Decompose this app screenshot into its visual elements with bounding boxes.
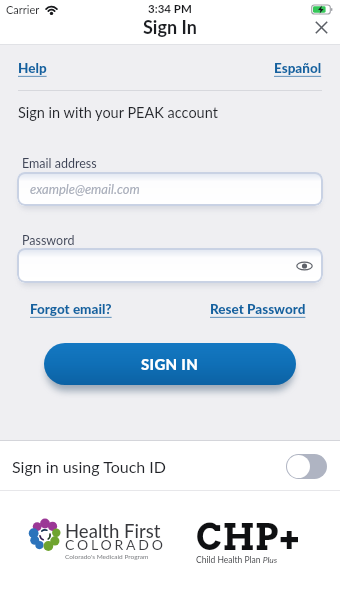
staticText: Sign in using Touch ID [12,457,167,476]
staticText: Forgot email? [30,301,112,317]
staticText: Sign In [143,16,197,37]
staticText: example@email.com [30,181,140,197]
staticText: Carrier [6,3,40,16]
staticText: Sign in with your PEAK account [18,104,218,121]
button[interactable]: example@email.com [17,172,323,206]
button[interactable]: Español [274,60,322,76]
button[interactable]: Forgot email? [30,300,112,318]
staticText: Reset Password [210,301,306,317]
button[interactable] [312,18,330,36]
staticText: Health First [65,520,161,540]
staticText: Colorado's Medicaid Program [65,553,149,561]
staticText: 3:34 PM [148,2,192,16]
button[interactable]: Sign in using Touch ID [0,448,340,484]
staticText: CHP+ [196,516,300,550]
button[interactable]: Reset Password [210,300,306,318]
button[interactable] [286,454,327,479]
staticText: Help [18,60,47,76]
staticText: Child Health Plan Plus [196,555,278,565]
button[interactable]: Help [18,60,47,76]
staticText: COLORADO [65,536,166,553]
button[interactable] [17,248,323,283]
staticText: Español [274,60,322,76]
staticText: Email address [22,156,97,171]
button[interactable]: SIGN IN [44,343,296,385]
staticText: SIGN IN [141,355,199,373]
staticText: Password [22,233,75,248]
